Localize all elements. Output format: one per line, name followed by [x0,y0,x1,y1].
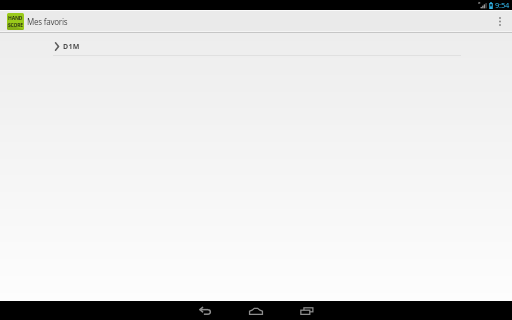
staticText: HAND [8,15,23,22]
staticText: 9:54 [495,0,510,10]
button[interactable]: D1M [0,33,512,56]
staticText: D1M [63,42,80,52]
staticText: Mes favoris [27,16,68,27]
button[interactable]: Home [239,301,273,320]
button[interactable]: Recent apps [290,301,324,320]
button[interactable]: More options [488,10,512,33]
button[interactable]: Back [188,301,222,320]
button[interactable]: Hand Score app icon [7,13,24,30]
staticText: SCORE [8,22,23,29]
